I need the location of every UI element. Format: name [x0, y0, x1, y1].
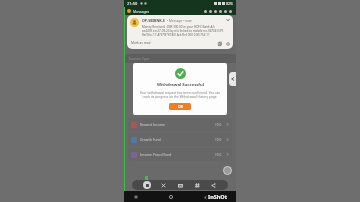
button[interactable]: Pause	[159, 181, 167, 189]
staticText: Income Type	[129, 56, 150, 61]
staticText: • Message • now	[167, 19, 192, 23]
button[interactable]: Draw	[193, 181, 201, 189]
staticText: ₹0.0	[215, 123, 222, 127]
button[interactable]: Stop recording	[143, 181, 151, 189]
staticText: OP-SBIBNK-S	[142, 18, 165, 23]
staticText: 21:50	[127, 1, 138, 6]
staticText: Withdrawal Successful	[157, 82, 204, 88]
button[interactable]: Recents	[202, 194, 208, 200]
button[interactable]: Settings	[225, 41, 230, 46]
staticText: Your withdrawal request has been confirm…	[138, 91, 222, 99]
button[interactable]: Income Proud Fund	[128, 148, 232, 161]
button[interactable]: OP-SBIBNK-S	[127, 15, 233, 49]
staticText: InShOt	[208, 193, 228, 200]
staticText: Income Proud Fund	[140, 152, 172, 157]
staticText: 82%	[226, 1, 233, 6]
button[interactable]: Floating action	[223, 166, 232, 175]
staticText: Money Received : INR 300.00 in your HDFC…	[142, 25, 225, 37]
button[interactable]: Growth Fund	[128, 133, 232, 146]
button[interactable]: Reward Income	[128, 118, 232, 131]
button[interactable]: Expand panel	[229, 72, 236, 86]
button[interactable]: Mark as read	[130, 40, 152, 46]
staticText: Mark as read	[131, 41, 151, 45]
staticText: Messages	[133, 9, 150, 14]
staticText: Growth Fund	[140, 137, 161, 142]
button[interactable]: Home	[167, 193, 175, 201]
staticText: Reward Income	[140, 122, 165, 127]
staticText: ₹0.0	[215, 153, 222, 157]
staticText: ₹0.0	[215, 138, 222, 142]
button[interactable]: Copy	[217, 41, 222, 46]
button[interactable]: Back	[132, 193, 140, 201]
button[interactable]: Camera	[176, 181, 184, 189]
button[interactable]: OK	[169, 103, 191, 110]
button[interactable]: Share	[209, 181, 217, 189]
staticText: OK	[178, 104, 183, 109]
